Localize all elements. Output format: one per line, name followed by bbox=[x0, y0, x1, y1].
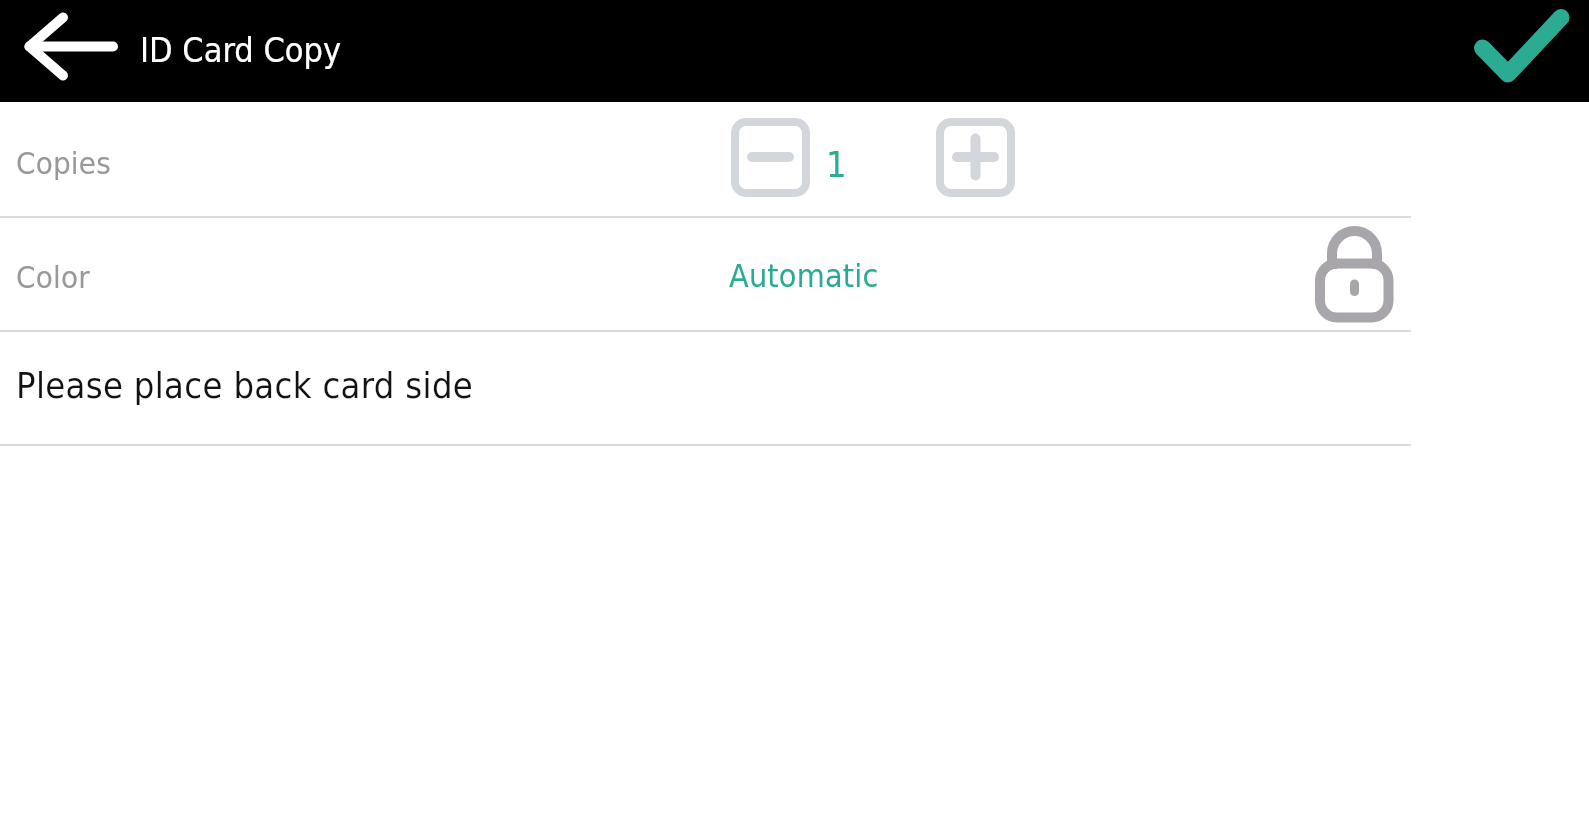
staticText: Color bbox=[16, 259, 90, 295]
button[interactable]: Color locked bbox=[1297, 218, 1413, 330]
button[interactable]: Confirm bbox=[1459, 0, 1589, 102]
staticText: Automatic bbox=[729, 257, 879, 294]
staticText: Copies bbox=[16, 145, 111, 181]
button[interactable]: Automatic bbox=[700, 218, 910, 330]
button[interactable]: Increase copies bbox=[936, 118, 1016, 198]
button[interactable]: Decrease copies bbox=[731, 118, 811, 198]
staticText: Please place back card side bbox=[16, 365, 474, 407]
staticText: 1 bbox=[826, 144, 847, 186]
button[interactable]: Back bbox=[0, 0, 128, 102]
staticText: ID Card Copy bbox=[140, 30, 342, 70]
